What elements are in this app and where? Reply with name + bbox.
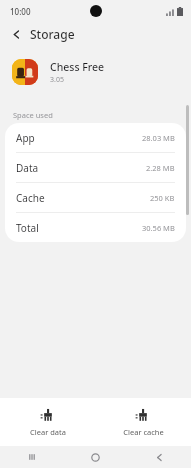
button[interactable]: Cache xyxy=(5,183,186,212)
staticText: 28.03 MB xyxy=(142,133,175,143)
staticText: Space used xyxy=(13,110,53,120)
button[interactable]: Home xyxy=(63,446,127,468)
button[interactable]: Total xyxy=(5,213,186,242)
button[interactable]: Clear cache xyxy=(95,408,191,437)
staticText: 30.56 MB xyxy=(142,223,175,233)
staticText: 250 KB xyxy=(150,193,175,203)
staticText: Clear cache xyxy=(123,427,164,437)
button[interactable]: Data xyxy=(5,153,186,182)
button[interactable]: Recent apps xyxy=(0,446,63,468)
staticText: 3.05 xyxy=(50,75,64,85)
staticText: Data xyxy=(16,161,39,175)
staticText: Total xyxy=(16,221,39,235)
staticText: Storage xyxy=(30,26,75,42)
staticText: Chess Free xyxy=(50,60,105,74)
button[interactable]: Back xyxy=(127,446,191,468)
button[interactable]: Chess Free xyxy=(0,50,191,94)
staticText: 2.28 MB xyxy=(146,163,175,173)
staticText: Clear data xyxy=(30,427,66,437)
staticText: Cache xyxy=(16,191,45,205)
button[interactable]: Clear data xyxy=(0,408,95,437)
staticText: 10:00 xyxy=(10,6,31,17)
button[interactable]: App xyxy=(5,123,186,152)
staticText: App xyxy=(16,131,35,145)
button[interactable]: Back xyxy=(6,24,26,44)
